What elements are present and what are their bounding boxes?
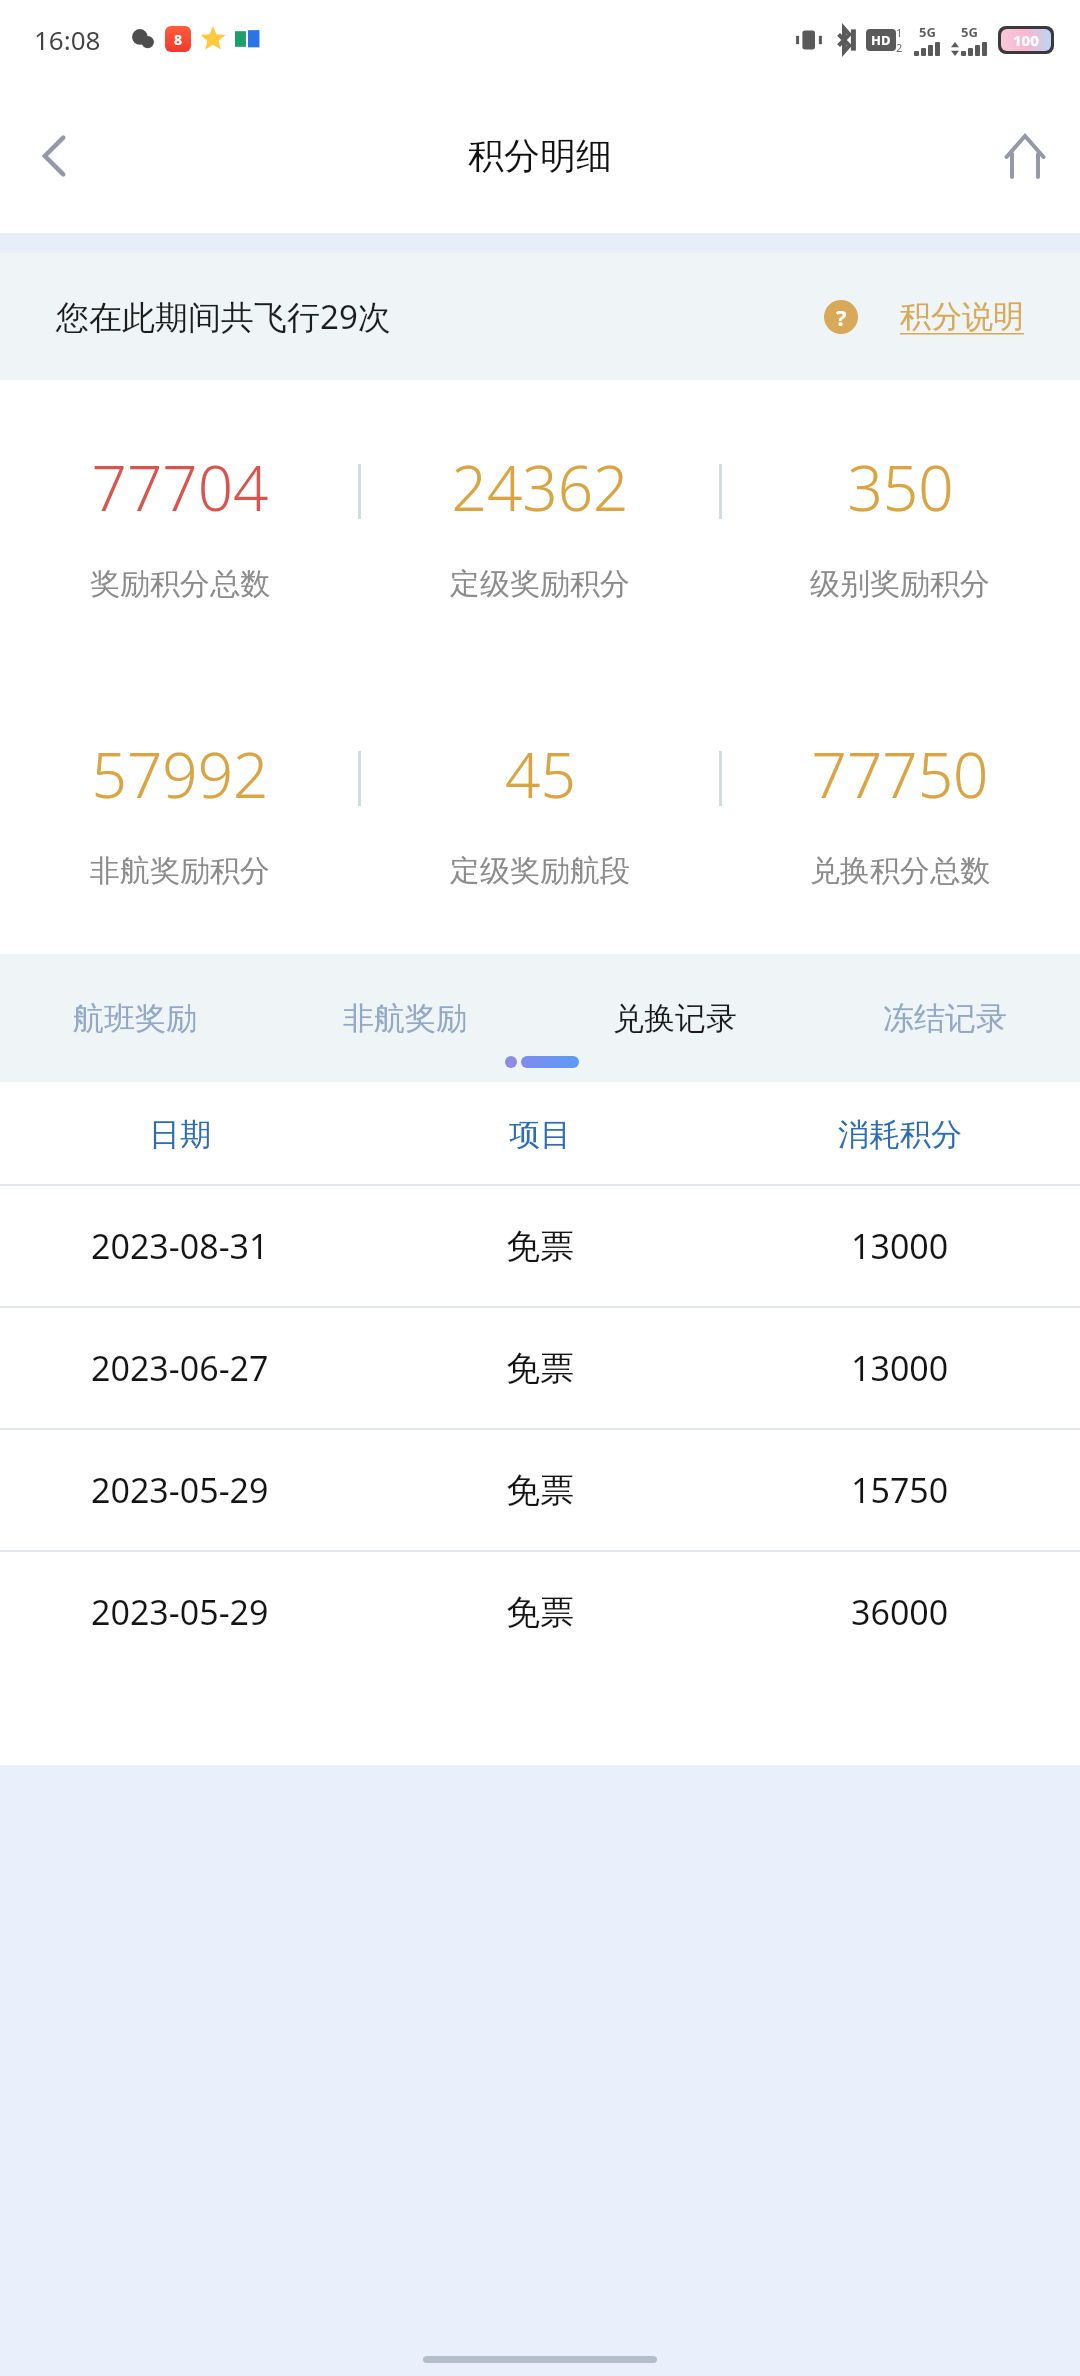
staticText: 免票 xyxy=(506,1469,574,1512)
staticText: 非航奖励 xyxy=(343,999,467,1038)
staticText: 奖励积分总数 xyxy=(90,565,270,603)
staticText: 兑换记录 xyxy=(613,999,737,1038)
staticText: 积分明细 xyxy=(468,133,612,178)
staticText: 航班奖励 xyxy=(73,999,197,1038)
staticText: 免票 xyxy=(506,1225,574,1268)
button[interactable]: 77750 xyxy=(720,667,1080,954)
button[interactable]: 350 xyxy=(720,380,1080,667)
staticText: 消耗积分 xyxy=(838,1115,962,1154)
button[interactable]: 77704 xyxy=(0,380,360,667)
staticText: 100 xyxy=(1013,30,1039,50)
button[interactable]: 航班奖励 xyxy=(0,954,270,1082)
button[interactable]: 2023-05-29 xyxy=(0,1430,1080,1550)
staticText: 日期 xyxy=(149,1115,211,1154)
staticText: 13000 xyxy=(851,1345,949,1391)
button[interactable]: 2023-08-31 xyxy=(0,1186,1080,1306)
staticText: 免票 xyxy=(506,1347,574,1390)
staticText: 57992 xyxy=(91,732,269,816)
button[interactable]: 非航奖励 xyxy=(270,954,540,1082)
button[interactable]: 57992 xyxy=(0,667,360,954)
staticText: 非航奖励积分 xyxy=(90,852,270,890)
staticText: 2 xyxy=(896,40,903,55)
button[interactable]: 兑换记录 xyxy=(540,954,810,1082)
staticText: 13000 xyxy=(851,1223,949,1269)
button[interactable]: 24362 xyxy=(360,380,720,667)
staticText: 2023-05-29 xyxy=(91,1589,269,1635)
staticText: 定级奖励积分 xyxy=(450,565,630,603)
button[interactable]: Back xyxy=(0,101,110,211)
staticText: 1 xyxy=(896,25,903,40)
staticText: 350 xyxy=(847,445,954,529)
staticText: 45 xyxy=(505,732,576,816)
staticText: 2023-08-31 xyxy=(91,1223,269,1269)
staticText: 15750 xyxy=(851,1467,949,1513)
button[interactable]: 2023-05-29 xyxy=(0,1552,1080,1672)
staticText: 5G xyxy=(919,23,936,41)
staticText: 8 xyxy=(174,30,183,49)
staticText: 24362 xyxy=(451,445,629,529)
staticText: HD xyxy=(871,31,891,49)
button[interactable]: 45 xyxy=(360,667,720,954)
staticText: 77704 xyxy=(91,445,269,529)
button[interactable]: Home xyxy=(970,101,1080,211)
staticText: 定级奖励航段 xyxy=(450,852,630,890)
staticText: 免票 xyxy=(506,1591,574,1634)
staticText: 项目 xyxy=(509,1115,571,1154)
staticText: ? xyxy=(836,302,847,332)
staticText: 冻结记录 xyxy=(883,999,1007,1038)
staticText: 2023-06-27 xyxy=(91,1345,269,1391)
staticText: 积分说明 xyxy=(900,297,1024,336)
staticText: 36000 xyxy=(851,1589,949,1635)
staticText: 您在此期间共飞行29次 xyxy=(56,294,391,339)
button[interactable]: 冻结记录 xyxy=(810,954,1080,1082)
button[interactable]: 2023-06-27 xyxy=(0,1308,1080,1428)
staticText: 级别奖励积分 xyxy=(810,565,990,603)
staticText: 5G xyxy=(961,23,978,41)
staticText: 兑换积分总数 xyxy=(810,852,990,890)
staticText: 16:08 xyxy=(34,22,101,57)
staticText: 77750 xyxy=(811,732,989,816)
staticText: 2023-05-29 xyxy=(91,1467,269,1513)
button[interactable]: ? xyxy=(824,297,1024,336)
